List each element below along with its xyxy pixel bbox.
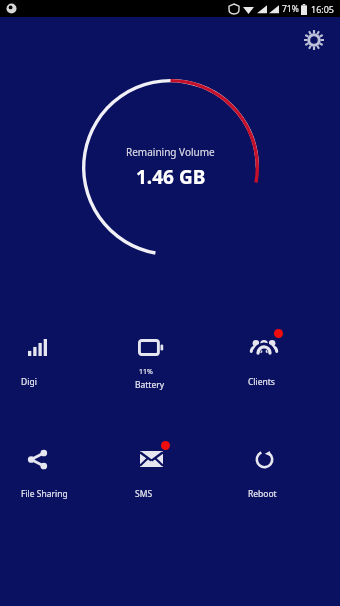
staticText: 71% — [282, 3, 299, 15]
button[interactable]: Reboot — [227, 442, 340, 501]
staticText: Clients — [248, 376, 275, 388]
button[interactable]: Digi — [0, 330, 114, 389]
staticText: SMS — [135, 488, 153, 500]
staticText: Reboot — [248, 488, 277, 500]
staticText: 1.46 GB — [136, 164, 206, 190]
staticText: Remaining Volume — [126, 145, 215, 159]
button[interactable]: 11% — [114, 330, 227, 392]
staticText: 16:05 — [311, 3, 335, 15]
button[interactable]: SMS — [114, 442, 227, 501]
staticText: Battery — [135, 379, 165, 391]
button[interactable]: Settings — [297, 23, 331, 57]
button[interactable]: File Sharing — [0, 442, 114, 501]
button[interactable]: Clients — [227, 330, 340, 389]
staticText: 11% — [139, 367, 153, 377]
staticText: Digi — [21, 376, 37, 388]
staticText: File Sharing — [21, 488, 68, 500]
